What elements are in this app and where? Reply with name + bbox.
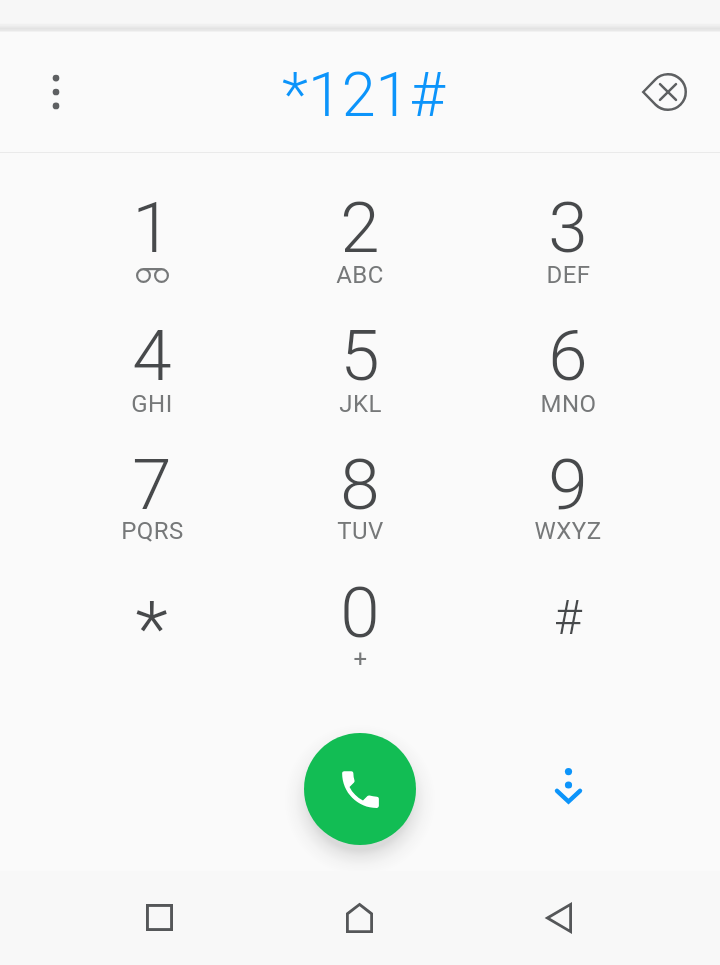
button[interactable]: 2 ABC [256,162,464,290]
button[interactable]: 3 DEF [464,162,672,290]
staticText: 8 [340,443,380,526]
staticText: GHI [131,390,173,418]
staticText: JKL [339,390,382,418]
staticText: + [353,645,368,673]
button[interactable]: Pound [464,547,672,675]
staticText: TUV [337,517,384,545]
button[interactable]: 7 PQRS [48,419,256,547]
staticText: MNO [540,390,597,418]
staticText: *121# [282,59,445,130]
button[interactable]: Call [304,733,416,845]
button[interactable]: Home [322,880,397,955]
button[interactable]: Backspace [629,57,699,127]
staticText: 6 [548,314,588,397]
button[interactable]: Hide dialpad [532,750,604,822]
button[interactable]: 4 GHI [48,290,256,418]
staticText: 7 [132,443,172,526]
button[interactable]: 8 TUV [256,419,464,547]
staticText: 1 [132,186,172,269]
staticText: * [135,584,168,673]
staticText: 3 [548,186,588,269]
staticText: 5 [340,314,380,397]
button[interactable]: 0 + [256,547,464,675]
button[interactable]: 9 WXYZ [464,419,672,547]
button[interactable]: Recent apps [122,880,197,955]
staticText: DEF [546,261,591,289]
button[interactable]: Star [48,547,256,675]
button[interactable]: Back [521,880,596,955]
staticText: # [554,589,582,645]
staticText: 4 [132,314,172,397]
staticText: 2 [340,186,380,269]
button[interactable]: 6 MNO [464,290,672,418]
button[interactable]: 1 voicemail [48,162,256,290]
staticText: ABC [336,261,384,289]
staticText: WXYZ [534,517,602,545]
staticText: PQRS [121,517,184,545]
button[interactable]: More options [21,57,91,127]
staticText: 0 [340,571,380,654]
staticText: 9 [548,443,588,526]
button[interactable]: 5 JKL [256,290,464,418]
